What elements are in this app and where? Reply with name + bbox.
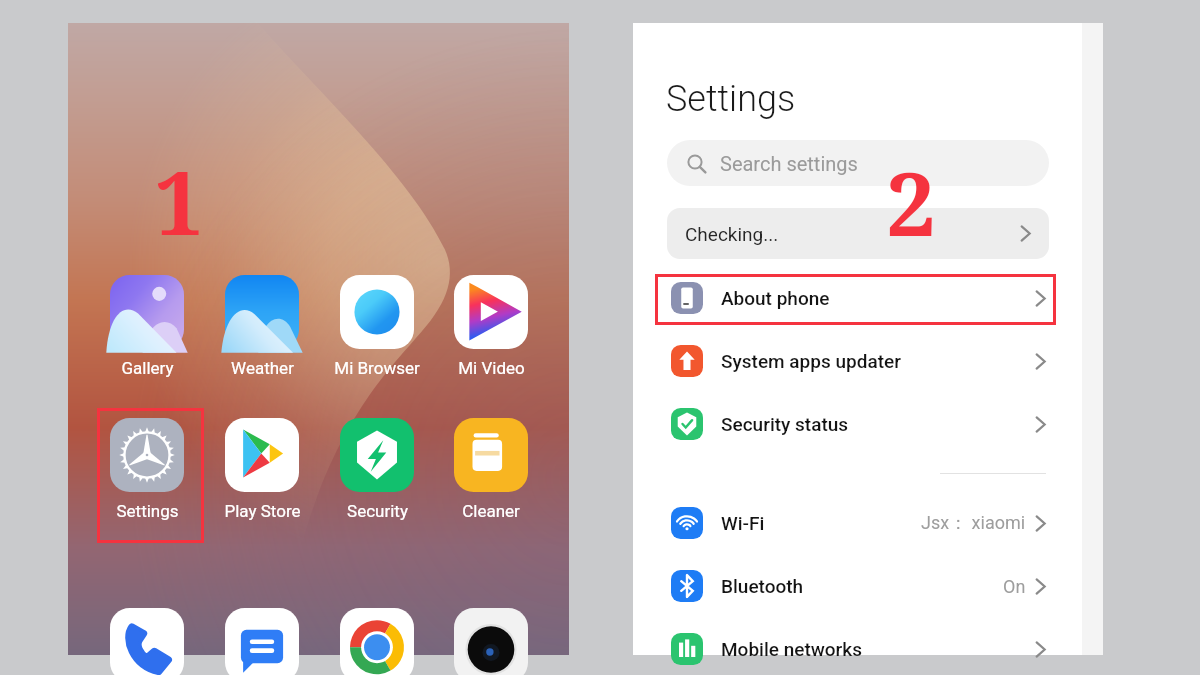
button[interactable]: Camera xyxy=(443,608,539,675)
staticText: Mobile networks xyxy=(721,638,863,660)
staticText: 1 xyxy=(154,141,204,261)
staticText: On xyxy=(1003,576,1026,597)
button[interactable]: Mi Browser xyxy=(329,275,425,378)
button[interactable]: Search settings xyxy=(667,140,1049,186)
staticText: Settings xyxy=(116,501,179,521)
staticText: Settings xyxy=(666,78,796,120)
staticText: Checking... xyxy=(685,223,779,245)
staticText: Security xyxy=(347,501,408,521)
staticText: Search settings xyxy=(720,152,858,175)
staticText: Bluetooth xyxy=(721,575,804,597)
staticText: Gallery xyxy=(121,358,174,378)
staticText: Cleaner xyxy=(462,501,520,521)
button[interactable]: Phone xyxy=(99,608,195,675)
staticText: Jsx： xiaomi xyxy=(921,512,1026,535)
button[interactable]: System apps updater xyxy=(633,330,1103,392)
button[interactable]: Gallery xyxy=(99,275,195,378)
button[interactable]: Security xyxy=(329,418,425,521)
staticText: Weather xyxy=(231,358,294,378)
staticText: Mi Video xyxy=(458,358,525,378)
staticText: Mi Browser xyxy=(334,358,420,378)
button[interactable]: Wi-Fi xyxy=(633,492,1103,554)
button[interactable]: Messages xyxy=(214,608,310,675)
button[interactable]: Chrome xyxy=(329,608,425,675)
button[interactable]: Weather xyxy=(214,275,310,378)
button[interactable]: Mobile networks xyxy=(633,618,1103,675)
staticText: System apps updater xyxy=(721,350,901,372)
staticText: Security status xyxy=(721,413,849,435)
staticText: About phone xyxy=(721,287,830,309)
button[interactable]: About phone xyxy=(633,267,1103,329)
button[interactable]: Checking... xyxy=(667,208,1049,259)
staticText: Play Store xyxy=(224,501,301,521)
button[interactable]: Bluetooth xyxy=(633,555,1103,617)
button[interactable]: Cleaner xyxy=(443,418,539,521)
button[interactable]: Settings xyxy=(99,418,195,521)
button[interactable]: Mi Video xyxy=(443,275,539,378)
button[interactable]: Security status xyxy=(633,393,1103,455)
staticText: 2 xyxy=(886,142,936,262)
staticText: Wi-Fi xyxy=(721,512,765,534)
button[interactable]: Play Store xyxy=(214,418,310,521)
